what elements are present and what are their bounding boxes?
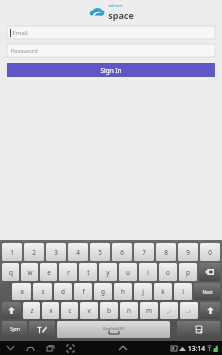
staticText: ? [189, 309, 191, 315]
button[interactable]: q [2, 263, 19, 281]
button[interactable]: , [160, 302, 178, 319]
button[interactable]: Email [7, 26, 215, 39]
staticText: c [68, 306, 72, 315]
staticText: ! [169, 309, 171, 315]
button[interactable]: Home [24, 342, 36, 354]
staticText: Sym [10, 326, 20, 333]
staticText: j [142, 287, 144, 296]
button[interactable]: 8 [156, 243, 176, 261]
staticText: v [87, 306, 91, 315]
staticText: t [87, 268, 90, 277]
button[interactable]: p [179, 263, 197, 281]
staticText: 3 [54, 248, 58, 257]
staticText: Password [10, 47, 38, 55]
staticText: s [41, 287, 45, 296]
button[interactable]: Expand [117, 342, 129, 354]
button[interactable]: Sign In [7, 63, 215, 77]
button[interactable]: t [79, 263, 97, 281]
staticText: r [67, 268, 70, 277]
staticText: o [166, 268, 170, 277]
staticText: . [187, 306, 189, 315]
staticText: 8 [164, 248, 168, 257]
button[interactable]: Password [7, 44, 215, 57]
staticText: e [47, 268, 51, 277]
button[interactable]: 4 [68, 243, 88, 261]
button[interactable]: x [42, 302, 59, 319]
button[interactable]: g [94, 283, 112, 300]
staticText: k [161, 287, 165, 296]
button[interactable]: u [119, 263, 137, 281]
button[interactable]: 5 [90, 243, 110, 261]
button[interactable]: m [140, 302, 158, 319]
button[interactable]: 1 [2, 243, 22, 261]
staticText: y [106, 268, 110, 277]
button[interactable]: 3 [46, 243, 66, 261]
staticText: p [186, 268, 190, 277]
button[interactable]: Shift [2, 302, 21, 319]
button[interactable]: 6 [112, 243, 132, 261]
button[interactable]: Backspace [199, 263, 220, 281]
button[interactable]: Screenshot [64, 342, 76, 354]
staticText: 13:14 [188, 344, 205, 353]
staticText: 1 [10, 248, 14, 257]
staticText: Sign In [100, 66, 122, 75]
button[interactable]: c [61, 302, 78, 319]
button[interactable]: 9 [178, 243, 198, 261]
button[interactable]: d [54, 283, 72, 300]
button[interactable]: j [134, 283, 152, 300]
button[interactable]: Handwriting [29, 321, 55, 338]
staticText: 7 [142, 248, 146, 257]
button[interactable]: Shift [200, 302, 220, 319]
staticText: 6 [120, 248, 124, 257]
staticText: n [127, 306, 131, 315]
button[interactable]: s [33, 283, 52, 300]
staticText: 5 [98, 248, 102, 257]
button[interactable]: Recents [44, 342, 56, 354]
staticText: 0 [208, 248, 212, 257]
staticText: g [101, 287, 105, 296]
button[interactable]: w [21, 263, 38, 281]
staticText: Next [202, 289, 213, 295]
staticText: telenor [108, 3, 123, 9]
staticText: m [146, 306, 152, 315]
staticText: a [20, 287, 24, 296]
button[interactable]: Sym [2, 321, 27, 338]
staticText: f [82, 287, 85, 296]
button[interactable]: Hide keyboard [4, 342, 16, 354]
button[interactable]: v [80, 302, 98, 319]
button[interactable]: r [59, 263, 77, 281]
staticText: z [30, 306, 34, 315]
staticText: w [27, 268, 33, 277]
button[interactable]: z [23, 302, 40, 319]
button[interactable]: e [40, 263, 57, 281]
button[interactable]: . [180, 302, 198, 319]
staticText: h [121, 287, 125, 296]
staticText: 2 [32, 248, 36, 257]
button[interactable]: 7 [134, 243, 154, 261]
button[interactable]: Space [57, 321, 170, 338]
button[interactable]: l [174, 283, 192, 300]
button[interactable]: n [120, 302, 138, 319]
staticText: i [147, 268, 149, 277]
staticText: Email [12, 29, 28, 37]
button[interactable]: Next [194, 283, 220, 300]
button[interactable]: h [114, 283, 132, 300]
button[interactable]: b [100, 302, 118, 319]
button[interactable]: i [139, 263, 157, 281]
button[interactable]: f [74, 283, 92, 300]
button[interactable]: a [12, 283, 31, 300]
staticText: space [108, 9, 134, 21]
staticText: 4 [76, 248, 80, 257]
staticText: 9 [186, 248, 190, 257]
staticText: x [49, 306, 53, 315]
staticText: b [107, 306, 111, 315]
button[interactable]: o [159, 263, 177, 281]
button[interactable]: y [99, 263, 117, 281]
staticText: u [126, 268, 130, 277]
button[interactable]: Emoji [177, 321, 220, 338]
staticText: l [182, 287, 184, 296]
button[interactable]: k [154, 283, 172, 300]
button[interactable]: 0 [200, 243, 220, 261]
button[interactable]: 2 [24, 243, 44, 261]
staticText: d [61, 287, 65, 296]
